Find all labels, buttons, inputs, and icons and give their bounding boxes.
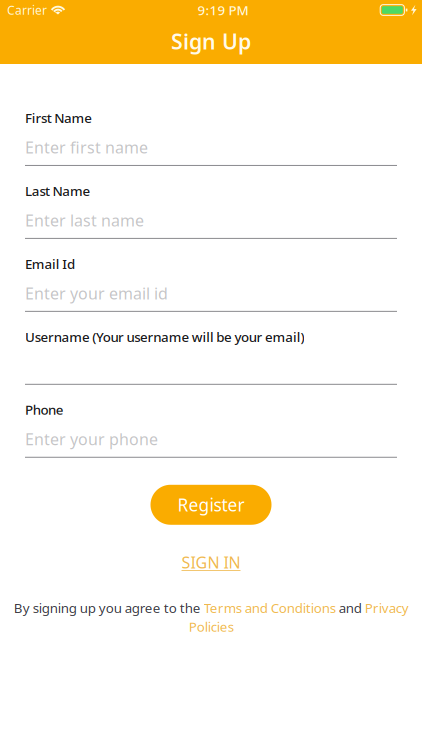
button[interactable]: Register (150, 485, 271, 525)
staticText: Enter first name (25, 137, 148, 158)
staticText: Username (Your username will be your ema… (25, 328, 304, 346)
staticText: Carrier (7, 2, 47, 18)
staticText: Enter your phone (25, 428, 158, 450)
staticText: Phone (25, 401, 64, 418)
staticText: Register (177, 493, 244, 516)
staticText: Email Id (25, 255, 75, 273)
staticText: Sign Up (171, 27, 251, 55)
staticText: By signing up you agree to the Terms and… (13, 599, 408, 635)
staticText: Enter your email id (25, 283, 168, 304)
staticText: 9:19 PM (197, 1, 248, 19)
staticText: Enter last name (25, 210, 144, 231)
staticText: Last Name (25, 182, 91, 200)
button[interactable]: SIGN IN (181, 552, 240, 573)
staticText: First Name (25, 109, 92, 127)
staticText: SIGN IN (181, 552, 240, 573)
